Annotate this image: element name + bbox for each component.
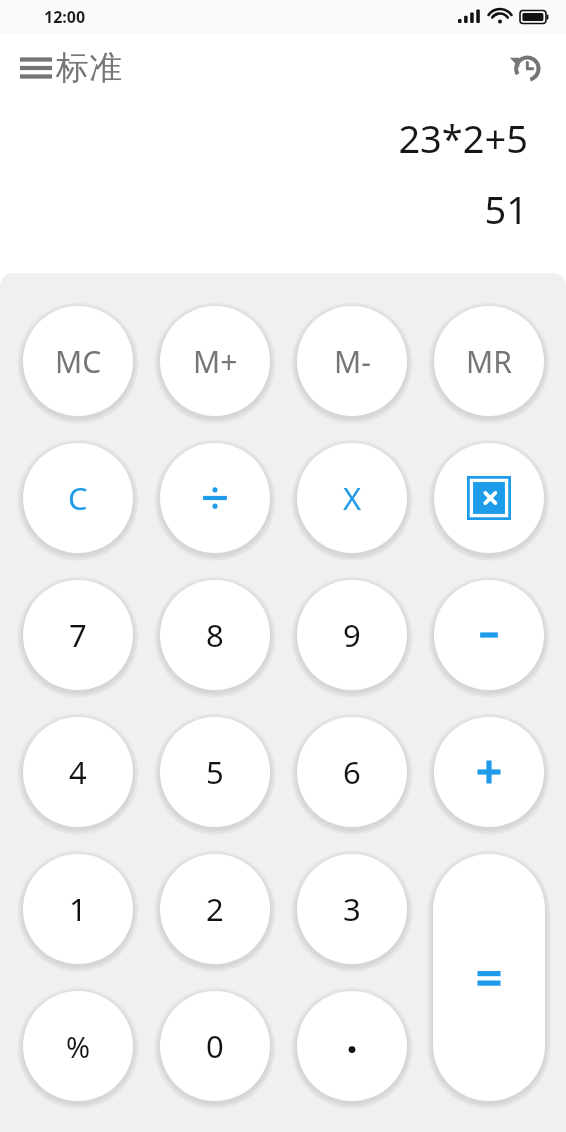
other: Minus	[472, 618, 506, 652]
button[interactable]: 2	[160, 854, 270, 964]
button[interactable]: 6	[297, 717, 407, 827]
button[interactable]: Menu	[20, 47, 122, 89]
button[interactable]: MR	[434, 306, 544, 416]
staticText: 2	[206, 888, 224, 930]
staticText: 12:00	[44, 6, 86, 28]
button[interactable]: 4	[23, 717, 133, 827]
button[interactable]: 8	[160, 580, 270, 690]
other: Plus	[471, 754, 507, 790]
button[interactable]: M+	[160, 306, 270, 416]
other: Divide	[198, 481, 232, 515]
other: Decimal point	[342, 1036, 362, 1056]
button[interactable]: Equals	[433, 854, 545, 1101]
button[interactable]: Minus	[434, 580, 544, 690]
button[interactable]: Divide	[160, 443, 270, 553]
button[interactable]: 9	[297, 580, 407, 690]
staticText: 51	[484, 183, 528, 235]
staticText: 0	[206, 1025, 224, 1067]
staticText: 6	[343, 751, 361, 793]
staticText: M+	[193, 341, 238, 382]
staticText: 5	[206, 751, 224, 793]
staticText: 1	[69, 888, 87, 930]
staticText: 9	[343, 614, 361, 656]
button[interactable]: C	[23, 443, 133, 553]
staticText: 3	[343, 888, 361, 930]
button[interactable]: MC	[23, 306, 133, 416]
button[interactable]: 7	[23, 580, 133, 690]
other: Equals	[473, 968, 505, 988]
button[interactable]: Backspace	[434, 443, 544, 553]
staticText: M-	[334, 341, 371, 382]
staticText: MC	[55, 341, 102, 382]
staticText: 7	[69, 614, 87, 656]
button[interactable]: 1	[23, 854, 133, 964]
button[interactable]: M-	[297, 306, 407, 416]
staticText: MR	[466, 341, 512, 382]
staticText: %	[66, 1027, 91, 1066]
button[interactable]: X	[297, 443, 407, 553]
button[interactable]: History	[502, 44, 550, 92]
staticText: C	[68, 477, 88, 519]
staticText: 8	[206, 614, 224, 656]
button[interactable]: Decimal point	[297, 991, 407, 1101]
staticText: 标准	[56, 47, 122, 89]
other: Menu	[20, 53, 52, 83]
button[interactable]: %	[23, 991, 133, 1101]
staticText: 23*2+5	[398, 112, 528, 164]
button[interactable]: Plus	[434, 717, 544, 827]
button[interactable]: 3	[297, 854, 407, 964]
staticText: 4	[69, 751, 87, 793]
staticText: X	[343, 477, 362, 519]
button[interactable]: 5	[160, 717, 270, 827]
button[interactable]: 0	[160, 991, 270, 1101]
